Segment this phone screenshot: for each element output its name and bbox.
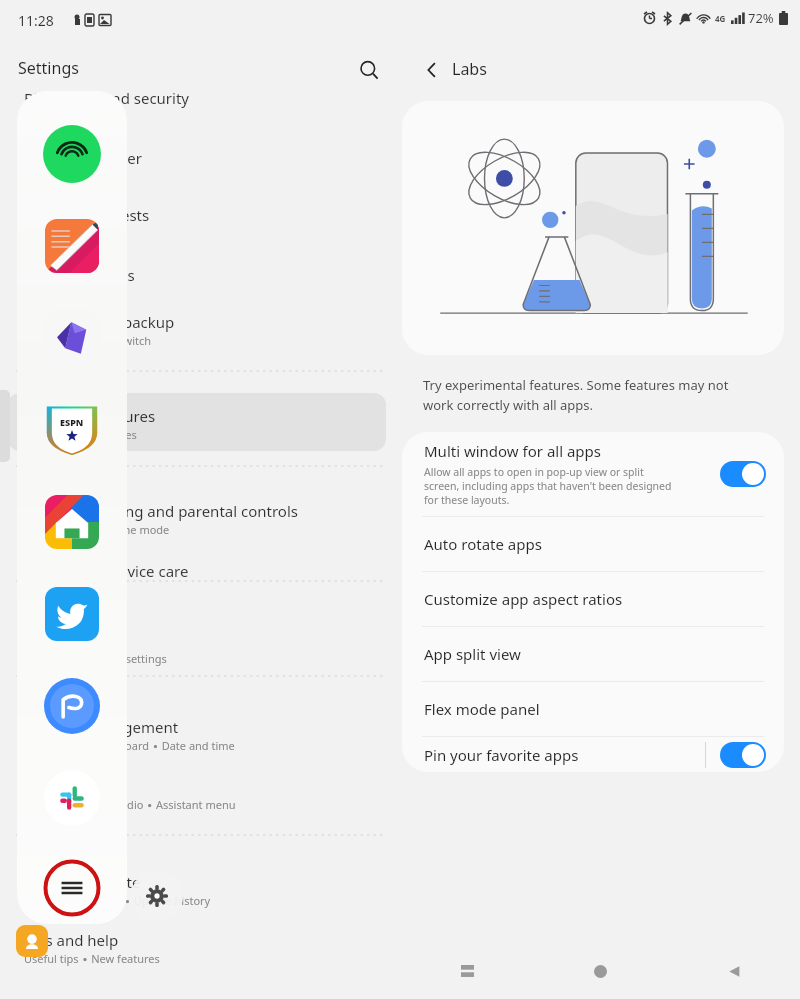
button[interactable]: General management (24, 717, 179, 737)
staticText: Language and keyboard ∙ Date and time (24, 738, 235, 753)
other: ESPN (44, 402, 100, 458)
staticText: TalkBack ∙ Mono audio ∙ Assistant menu (24, 797, 236, 812)
button[interactable]: Back (414, 52, 450, 88)
button[interactable]: Tips and help (24, 930, 119, 950)
button[interactable]: Slack (41, 767, 103, 829)
other: Slack (44, 770, 100, 826)
button[interactable]: Google Home (41, 491, 103, 553)
staticText: Pin your favorite apps (424, 745, 705, 765)
button[interactable]: Notes (41, 215, 103, 277)
staticText: Settings (18, 57, 79, 79)
staticText: Accounts ∙ Smart Switch (24, 333, 152, 348)
other: Twitter (45, 587, 99, 641)
staticText: Auto rotate apps (424, 534, 542, 554)
button[interactable]: Toggle on (720, 742, 766, 768)
button[interactable]: Pin your favorite apps (402, 737, 784, 772)
button[interactable]: Settings shortcut (131, 870, 183, 922)
staticText: Default apps ∙ App settings (24, 651, 167, 666)
button[interactable]: Auto rotate apps (402, 517, 784, 571)
button[interactable]: ESPN (41, 399, 103, 461)
button[interactable]: Search (351, 52, 387, 88)
button[interactable] (8, 393, 386, 451)
button[interactable]: Battery and device care (24, 561, 189, 581)
staticText: Labs (452, 58, 487, 80)
other: Spotify (43, 125, 101, 183)
button[interactable]: More apps (41, 857, 103, 919)
button[interactable]: Back (709, 947, 757, 995)
staticText: Useful tips ∙ New features (24, 951, 160, 966)
staticText: Try experimental features. Some features… (423, 376, 753, 414)
button[interactable]: Multi window for all apps (402, 432, 784, 516)
button[interactable]: Recents (443, 947, 491, 995)
button[interactable]: Toggle on (720, 461, 766, 487)
other: More apps (43, 859, 101, 917)
staticText: 72% (748, 9, 774, 27)
button[interactable]: Apps (24, 630, 60, 650)
button[interactable]: Location requests (24, 205, 150, 225)
other: Notes (45, 219, 99, 273)
staticText: Labs ∙ Bixby Routines (24, 427, 137, 442)
staticText: Download updates ∙ Update history (24, 893, 211, 908)
staticText: Multi window for all apps (424, 441, 601, 461)
other: Google Home (45, 495, 99, 549)
button[interactable]: App split view (402, 627, 784, 681)
button[interactable]: Twitter (41, 583, 103, 645)
staticText: App split view (424, 644, 521, 664)
button[interactable]: Customize app aspect ratios (402, 572, 784, 626)
button[interactable]: Accounts and backup (24, 312, 175, 332)
button[interactable]: Accessibility (24, 776, 109, 796)
button[interactable]: Gem app (41, 307, 103, 369)
button[interactable]: Google services (24, 265, 135, 285)
button[interactable]: Flex mode panel (402, 682, 784, 736)
staticText: Allow all apps to open in pop-up view or… (424, 465, 674, 507)
button[interactable]: Privacy manager (24, 148, 142, 168)
button[interactable]: Home (576, 947, 624, 995)
button[interactable]: Biometrics and security (24, 88, 190, 108)
staticText: 4G (715, 13, 726, 24)
staticText: Flex mode panel (424, 699, 540, 719)
button[interactable]: Software update (24, 872, 141, 892)
button[interactable]: Robinhood (41, 675, 103, 737)
staticText: App timers ∙ Bedtime mode (24, 522, 170, 537)
staticText: Storage ∙ Memory (24, 582, 121, 597)
button[interactable]: Advanced features (24, 406, 156, 426)
staticText: Customize app aspect ratios (424, 589, 623, 609)
button[interactable]: Spotify (41, 123, 103, 185)
staticText: ESPN (60, 416, 84, 428)
staticText: 11:28 (18, 11, 54, 30)
button[interactable]: Digital Wellbeing and parental controls (24, 501, 298, 521)
other: Robinhood (44, 678, 100, 734)
other: Gem app (44, 310, 100, 366)
